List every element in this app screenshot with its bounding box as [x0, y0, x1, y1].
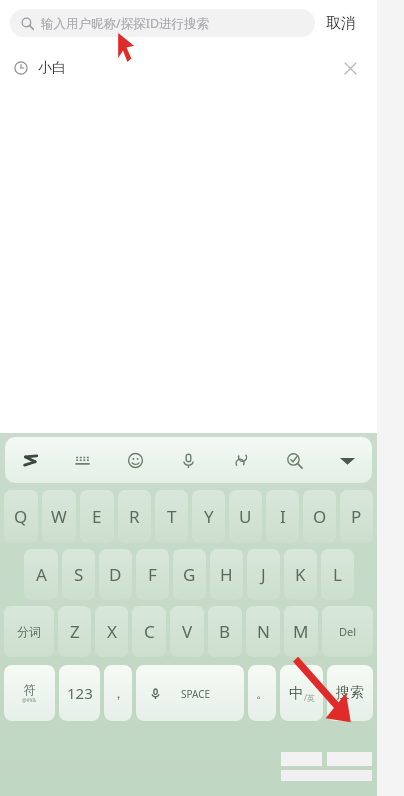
button[interactable]: W: [42, 490, 76, 543]
button[interactable]: 符: [4, 665, 55, 721]
button[interactable]: SPACE: [136, 665, 244, 721]
button[interactable]: 分词: [4, 606, 54, 657]
staticText: 取消: [326, 14, 356, 33]
staticText: 分词: [17, 624, 41, 639]
staticText: /英: [304, 692, 315, 703]
staticText: D: [109, 563, 122, 586]
button[interactable]: 搜索: [327, 665, 373, 721]
button[interactable]: ，: [104, 665, 132, 721]
button[interactable]: Del: [322, 606, 373, 657]
button[interactable]: C: [132, 606, 166, 657]
button[interactable]: R: [118, 490, 151, 543]
staticText: SPACE: [181, 687, 211, 701]
staticText: 中: [289, 684, 304, 703]
button[interactable]: B: [208, 606, 242, 657]
button[interactable]: E: [80, 490, 114, 543]
button[interactable]: L: [321, 549, 354, 600]
staticText: M: [293, 620, 309, 643]
button[interactable]: P: [340, 490, 373, 543]
button[interactable]: A: [24, 549, 58, 600]
button[interactable]: Hide keyboard: [332, 445, 362, 475]
staticText: 123: [67, 683, 93, 703]
staticText: B: [219, 620, 231, 643]
staticText: 搜索: [336, 684, 364, 702]
button[interactable]: Y: [192, 490, 225, 543]
staticText: P: [351, 505, 362, 528]
button[interactable]: I: [266, 490, 299, 543]
staticText: ，: [112, 685, 125, 701]
button[interactable]: Attachment: [226, 445, 256, 475]
staticText: J: [261, 563, 266, 586]
staticText: K: [295, 563, 306, 586]
staticText: Y: [204, 505, 214, 528]
staticText: T: [167, 505, 177, 528]
staticText: U: [239, 505, 252, 528]
staticText: L: [333, 563, 342, 586]
button[interactable]: X: [95, 606, 128, 657]
staticText: Z: [70, 620, 80, 643]
staticText: E: [92, 505, 102, 528]
staticText: O: [313, 505, 327, 528]
button[interactable]: H: [210, 549, 243, 600]
button[interactable]: 中: [280, 665, 323, 721]
button[interactable]: 123: [59, 665, 100, 721]
button[interactable]: S: [62, 549, 95, 600]
button[interactable]: 取消: [315, 8, 367, 39]
staticText: 符: [24, 682, 36, 697]
button[interactable]: Remove search history: [337, 55, 363, 81]
button[interactable]: T: [155, 490, 188, 543]
button[interactable]: V: [170, 606, 204, 657]
staticText: S: [74, 563, 84, 586]
button[interactable]: 小白: [0, 46, 377, 90]
staticText: I: [280, 505, 286, 528]
button[interactable]: D: [99, 549, 132, 600]
staticText: C: [144, 620, 155, 643]
staticText: V: [182, 620, 193, 643]
button[interactable]: 输入用户昵称/探探ID进行搜索: [10, 9, 315, 37]
button[interactable]: O: [303, 490, 336, 543]
staticText: F: [148, 563, 157, 586]
button[interactable]: 。: [248, 665, 276, 721]
staticText: N: [257, 620, 270, 643]
button[interactable]: M: [284, 606, 318, 657]
button[interactable]: Voice input: [173, 445, 203, 475]
button[interactable]: Z: [58, 606, 91, 657]
button[interactable]: G: [173, 549, 206, 600]
button[interactable]: Search settings: [279, 445, 309, 475]
button[interactable]: Emoji: [120, 445, 150, 475]
button[interactable]: J: [247, 549, 280, 600]
button[interactable]: U: [229, 490, 262, 543]
staticText: @#¥&: [22, 697, 37, 704]
staticText: W: [51, 505, 67, 528]
button[interactable]: Q: [4, 490, 38, 543]
staticText: 小白: [38, 59, 66, 77]
button[interactable]: K: [284, 549, 317, 600]
staticText: H: [220, 563, 233, 586]
staticText: Q: [14, 505, 28, 528]
staticText: Del: [339, 624, 357, 639]
staticText: 。: [256, 685, 269, 701]
staticText: R: [129, 505, 140, 528]
staticText: A: [36, 563, 47, 586]
staticText: X: [107, 620, 117, 643]
staticText: G: [183, 563, 196, 586]
button[interactable]: F: [136, 549, 169, 600]
button[interactable]: Keyboard layout: [67, 445, 97, 475]
button[interactable]: N: [246, 606, 280, 657]
staticText: 输入用户昵称/探探ID进行搜索: [41, 15, 210, 32]
button[interactable]: Sogou input method: [15, 445, 45, 475]
